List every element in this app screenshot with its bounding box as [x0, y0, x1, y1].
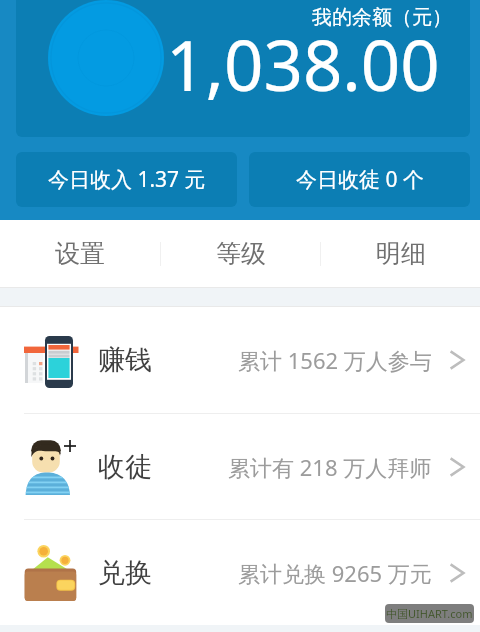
staticText: 收徒 [98, 450, 152, 484]
staticText: 累计兑换 9265 万元 [238, 558, 432, 588]
staticText: 等级 [216, 238, 266, 269]
staticText: 我的余额（元） [312, 5, 452, 30]
staticText: 累计 1562 万人参与 [238, 345, 432, 375]
staticText: 累计有 218 万人拜师 [228, 452, 432, 482]
button[interactable]: 我的余额（元） [16, 0, 470, 137]
staticText: 1,038.00 [166, 17, 440, 111]
staticText: 今日收入 1.37 元 [48, 165, 206, 194]
button[interactable]: 今日收入 1.37 元 [16, 152, 237, 207]
staticText: 明细 [376, 238, 426, 269]
button[interactable]: 设置 [0, 220, 160, 287]
staticText: 中国UIHART.com [386, 606, 473, 621]
button[interactable]: 明细 [321, 220, 480, 287]
button[interactable]: 赚钱 [0, 307, 480, 413]
staticText: 今日收徒 0 个 [296, 165, 424, 194]
button[interactable]: 兑换 [0, 520, 480, 625]
staticText: 赚钱 [98, 343, 152, 377]
staticText: 兑换 [98, 556, 152, 590]
button[interactable]: 等级 [161, 220, 320, 287]
button[interactable]: 收徒 [0, 414, 480, 519]
staticText: 设置 [55, 238, 105, 269]
button[interactable]: 今日收徒 0 个 [249, 152, 470, 207]
